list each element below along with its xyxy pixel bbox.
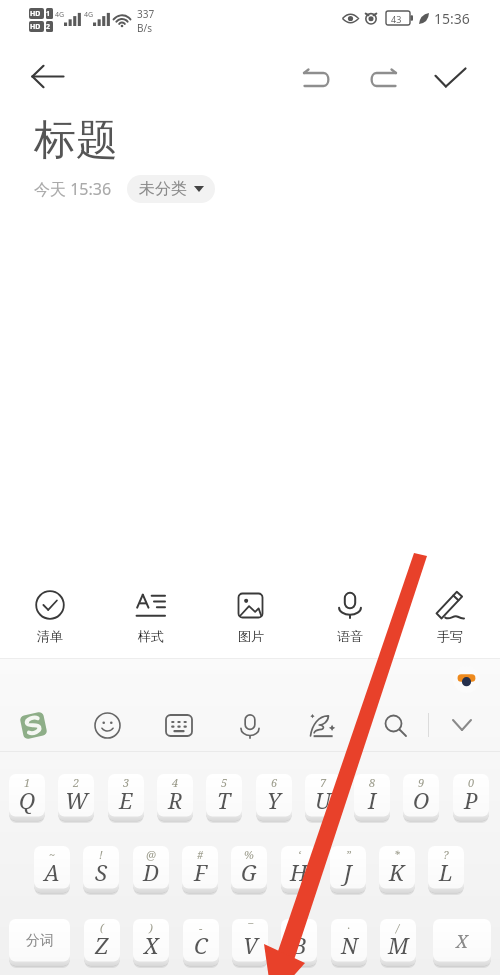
staticText: 手写 — [437, 628, 463, 644]
staticText: ” — [346, 847, 351, 862]
staticText: N — [341, 930, 358, 960]
button[interactable]: 清单 — [12, 590, 88, 654]
staticText: 图片 — [238, 628, 264, 644]
button[interactable]: Emoji — [85, 703, 129, 747]
staticText: 4 — [172, 775, 179, 790]
button[interactable]: Voice input — [228, 703, 272, 747]
staticText: W — [65, 785, 88, 815]
staticText: K — [389, 857, 405, 887]
button[interactable]: % — [231, 846, 267, 894]
staticText: R — [168, 785, 183, 815]
button[interactable]: 0 — [453, 774, 489, 822]
staticText: 语音 — [337, 628, 363, 644]
staticText: 今天 15:36 — [34, 178, 112, 200]
button[interactable]: Search — [373, 703, 417, 747]
staticText: @ — [146, 847, 157, 862]
button[interactable]: Avatar — [453, 666, 480, 693]
staticText: 4G — [55, 10, 65, 20]
button[interactable]: ” — [330, 846, 366, 894]
button[interactable]: 4 — [157, 774, 193, 822]
staticText: 未分类 — [139, 179, 187, 199]
staticText: L — [439, 857, 453, 887]
staticText: 2 — [46, 22, 51, 32]
button[interactable]: ( — [84, 919, 120, 967]
staticText: ~ — [49, 847, 56, 862]
staticText: T — [217, 785, 231, 815]
button[interactable]: ? — [428, 846, 464, 894]
button[interactable]: 9 — [403, 774, 439, 822]
button[interactable]: * — [379, 846, 415, 894]
button[interactable]: ¯ — [232, 919, 268, 967]
button[interactable]: 语音 — [312, 590, 388, 654]
button[interactable]: Handwriting — [300, 703, 344, 747]
button[interactable]: + — [281, 919, 317, 967]
button[interactable]: ~ — [34, 846, 70, 894]
staticText: V — [243, 930, 258, 960]
staticText: 1 — [24, 775, 31, 790]
button[interactable]: Redo — [361, 59, 405, 99]
staticText: # — [197, 847, 204, 862]
staticText: P — [464, 785, 478, 815]
button[interactable]: 7 — [305, 774, 341, 822]
staticText: ) — [149, 920, 153, 935]
staticText: X — [456, 929, 468, 954]
staticText: U — [315, 785, 332, 815]
staticText: % — [244, 847, 254, 862]
staticText: I — [368, 785, 377, 815]
button[interactable]: 手写 — [412, 590, 488, 654]
button[interactable]: 样式 — [112, 590, 188, 654]
staticText: G — [241, 857, 257, 887]
staticText: A — [44, 857, 60, 887]
staticText: O — [413, 785, 430, 815]
button[interactable]: 5 — [206, 774, 242, 822]
staticText: E — [119, 785, 133, 815]
button[interactable]: ! — [83, 846, 119, 894]
button[interactable]: 3 — [108, 774, 144, 822]
staticText: 9 — [418, 775, 425, 790]
button[interactable]: · — [331, 919, 367, 967]
staticText: F — [194, 857, 207, 887]
button[interactable]: 1 — [9, 774, 45, 822]
staticText: ‘ — [298, 847, 301, 862]
button[interactable]: 未分类 — [127, 175, 215, 203]
button[interactable]: Keyboard — [157, 703, 201, 747]
staticText: 1 — [46, 9, 51, 19]
staticText: * — [394, 847, 400, 862]
button[interactable]: 2 — [58, 774, 94, 822]
button[interactable]: 6 — [256, 774, 292, 822]
staticText: ( — [100, 920, 104, 935]
button[interactable]: Done — [428, 56, 473, 98]
staticText: S — [95, 857, 107, 887]
button[interactable]: Back — [27, 56, 68, 97]
staticText: J — [344, 857, 352, 887]
staticText: Y — [267, 785, 281, 815]
button[interactable]: # — [182, 846, 218, 894]
staticText: 5 — [221, 775, 228, 790]
button[interactable]: Sogou — [11, 703, 55, 747]
button[interactable]: 分词 — [9, 919, 70, 967]
staticText: X — [144, 930, 159, 960]
staticText: 样式 — [138, 628, 164, 644]
button[interactable]: Note body — [0, 203, 500, 570]
button[interactable]: 图片 — [212, 590, 288, 654]
button[interactable]: ‘ — [281, 846, 317, 894]
button[interactable]: ) — [133, 919, 169, 967]
button[interactable]: X — [433, 919, 491, 967]
button[interactable]: Collapse — [440, 703, 484, 747]
button[interactable]: 8 — [354, 774, 390, 822]
staticText: / — [396, 920, 400, 935]
staticText: D — [143, 857, 159, 887]
staticText: 337 — [137, 7, 155, 21]
button[interactable]: / — [380, 919, 416, 967]
staticText: Z — [95, 930, 109, 960]
staticText: 43 — [391, 13, 402, 25]
button[interactable]: Undo — [295, 59, 339, 99]
staticText: ¯ — [247, 920, 253, 935]
staticText: - — [199, 920, 203, 935]
staticText: Q — [19, 785, 36, 815]
button[interactable]: @ — [133, 846, 169, 894]
button[interactable]: - — [183, 919, 219, 967]
staticText: 7 — [320, 775, 327, 790]
staticText: 标题 — [34, 114, 118, 167]
staticText: 15:36 — [434, 9, 470, 28]
